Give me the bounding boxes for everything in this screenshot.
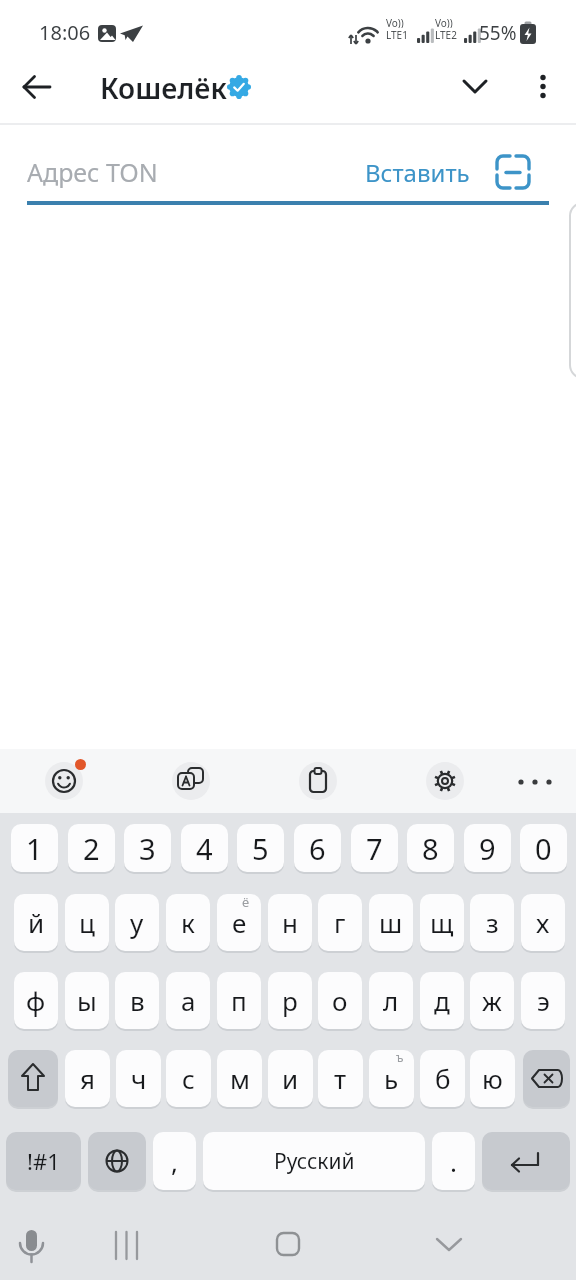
staticText: 2 [83,829,100,868]
button[interactable]: э [521,972,565,1029]
button[interactable]: б [420,1050,465,1107]
button[interactable] [513,767,557,795]
staticText: х [536,905,550,940]
button[interactable]: Вставить [362,151,472,193]
button[interactable] [426,762,464,800]
button[interactable]: р [268,972,312,1029]
button[interactable]: 2 [68,824,115,872]
button[interactable]: т [318,1050,363,1107]
staticText: щ [430,905,454,940]
button[interactable] [102,1222,150,1270]
button[interactable]: с [166,1050,211,1107]
button[interactable]: г [318,894,362,951]
staticText: ь [384,1061,399,1096]
staticText: я [80,1061,96,1096]
staticText: л [383,983,399,1018]
staticText: Адрес TON [27,155,158,189]
button[interactable]: а [166,972,210,1029]
button[interactable]: ф [14,972,58,1029]
button[interactable]: 1 [11,824,58,872]
button[interactable]: !#1 [6,1132,81,1190]
staticText: !#1 [27,1146,60,1176]
button[interactable] [45,762,83,800]
button[interactable]: 9 [464,824,511,872]
staticText: е [232,905,247,940]
staticText: м [230,1061,250,1096]
button[interactable]: ш [369,894,413,951]
button[interactable]: д [420,972,464,1029]
button[interactable] [264,1222,312,1270]
staticText: ё [242,893,250,909]
staticText: Vo)) [435,16,453,28]
staticText: 3 [139,829,156,868]
button[interactable] [425,1222,473,1270]
staticText: ы [77,983,97,1018]
button[interactable]: м [217,1050,262,1107]
button[interactable]: е [217,894,261,951]
button[interactable]: х [521,894,565,951]
button[interactable] [489,148,537,196]
button[interactable]: о [318,972,362,1029]
button[interactable]: 8 [407,824,454,872]
button[interactable] [8,1222,56,1270]
button[interactable] [482,1132,570,1190]
staticText: ъ [396,1049,404,1065]
staticText: г [334,905,346,940]
staticText: 5 [252,829,269,868]
staticText: ш [379,905,403,940]
button[interactable] [519,62,567,110]
button[interactable] [299,762,337,800]
button[interactable]: 7 [351,824,398,872]
button[interactable]: 4 [181,824,228,872]
button[interactable]: ц [65,894,109,951]
button[interactable]: , [153,1132,196,1190]
staticText: Вставить [365,156,470,189]
button[interactable]: й [14,894,58,951]
button[interactable]: щ [420,894,464,951]
staticText: Vo)) [386,16,404,28]
staticText: й [28,905,45,940]
button[interactable] [8,1050,58,1107]
button[interactable]: ю [470,1050,515,1107]
button[interactable]: 3 [124,824,171,872]
button[interactable]: я [65,1050,110,1107]
button[interactable]: ь [369,1050,414,1107]
button[interactable]: ж [470,972,514,1029]
staticText: ц [79,905,95,940]
staticText: . [450,1144,457,1179]
button[interactable] [172,762,210,800]
button[interactable]: 5 [237,824,284,872]
button[interactable]: 0 [520,824,567,872]
button[interactable]: ы [65,972,109,1029]
staticText: д [434,983,450,1018]
staticText: р [282,983,298,1018]
button[interactable]: 6 [294,824,341,872]
staticText: э [537,983,550,1018]
button[interactable]: п [217,972,261,1029]
button[interactable] [88,1132,146,1190]
staticText: Русский [274,1147,355,1176]
button[interactable]: в [115,972,159,1029]
staticText: ф [26,983,46,1018]
button[interactable]: Русский [203,1132,425,1190]
staticText: о [332,983,348,1018]
staticText: п [231,983,247,1018]
button[interactable]: к [166,894,210,951]
staticText: 6 [309,829,326,868]
button[interactable] [451,62,499,110]
staticText: с [182,1061,195,1096]
button[interactable]: з [470,894,514,951]
button[interactable] [14,63,62,111]
staticText: 1 [26,829,43,868]
button[interactable]: ч [116,1050,161,1107]
staticText: Кошелёк [100,69,227,105]
staticText: н [282,905,298,940]
button[interactable]: н [268,894,312,951]
button[interactable]: л [369,972,413,1029]
button[interactable]: . [432,1132,475,1190]
staticText: 8 [422,829,439,868]
staticText: LTE2 [435,28,457,40]
button[interactable] [523,1050,570,1107]
button[interactable]: у [115,894,159,951]
button[interactable]: и [268,1050,313,1107]
